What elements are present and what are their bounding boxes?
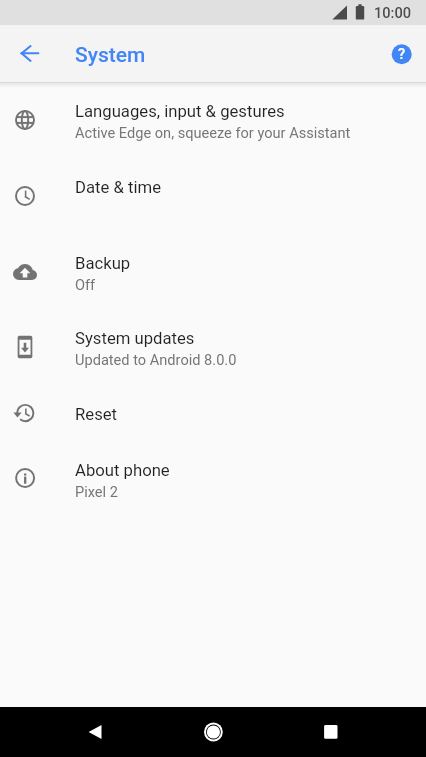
staticText: Languages, input & gestures (75, 102, 285, 122)
staticText: Off (75, 276, 96, 293)
staticText: About phone (75, 461, 170, 481)
staticText: System (75, 43, 146, 68)
staticText: Reset (75, 405, 118, 425)
staticText: Backup (75, 254, 131, 274)
button[interactable]: System updates (0, 309, 426, 385)
button[interactable]: Navigate up (11, 35, 47, 71)
staticText: Updated to Android 8.0.0 (75, 351, 237, 368)
button[interactable]: Recent apps (311, 712, 351, 752)
staticText: 10:00 (374, 4, 412, 21)
staticText: Pixel 2 (75, 483, 118, 500)
button[interactable]: Languages, input & gestures (0, 82, 426, 158)
button[interactable]: Backup (0, 234, 426, 309)
button[interactable]: About phone (0, 441, 426, 515)
staticText: Active Edge on, squeeze for your Assista… (75, 124, 351, 141)
button[interactable]: Home (193, 712, 233, 752)
staticText: System updates (75, 329, 195, 349)
button[interactable]: Reset (0, 385, 426, 441)
staticText: Date & time (75, 178, 161, 198)
button[interactable]: Back (75, 712, 115, 752)
button[interactable]: Date & time (0, 158, 426, 234)
button[interactable]: Help (386, 38, 418, 70)
staticText: ? (398, 45, 406, 62)
